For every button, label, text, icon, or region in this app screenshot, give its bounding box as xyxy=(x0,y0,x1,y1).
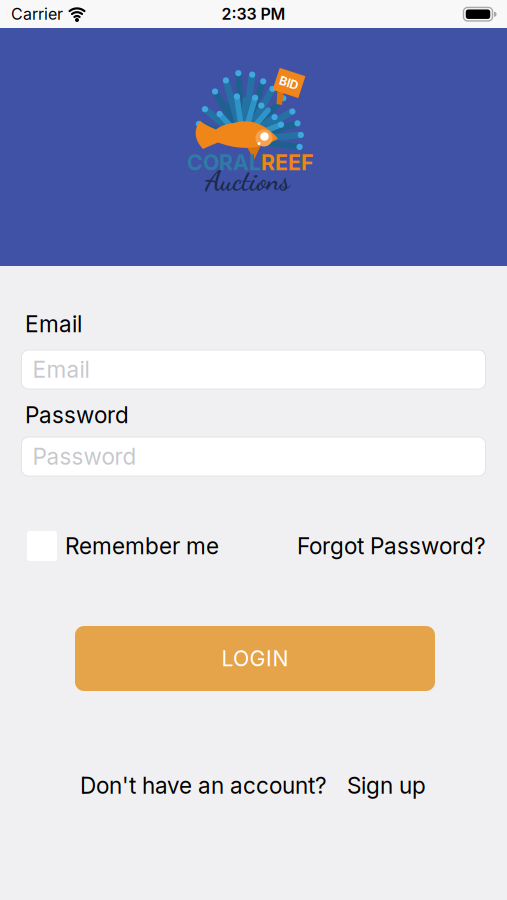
button[interactable]: LOGIN xyxy=(75,626,435,691)
staticText: REEF xyxy=(261,150,314,175)
button[interactable]: Password xyxy=(21,437,485,476)
staticText: Remember me xyxy=(65,533,219,559)
staticText: 2:33 PM xyxy=(221,5,285,23)
staticText: Password xyxy=(25,402,129,428)
staticText: BID xyxy=(279,76,299,90)
staticText: Carrier xyxy=(11,5,63,23)
button[interactable]: Sign up xyxy=(347,772,426,799)
staticText: Sign up xyxy=(347,772,426,799)
staticText: LOGIN xyxy=(221,646,288,671)
staticText: Email xyxy=(25,311,82,337)
button[interactable]: Remember me xyxy=(27,531,219,561)
button[interactable]: Email xyxy=(21,350,485,389)
staticText: Password xyxy=(32,443,136,470)
staticText: Email xyxy=(32,356,89,383)
staticText: Auctions xyxy=(205,165,290,197)
button[interactable]: Forgot Password? xyxy=(297,533,486,559)
staticText: Don't have an account? xyxy=(80,772,327,799)
staticText: Forgot Password? xyxy=(297,533,486,559)
staticText: CORAL xyxy=(187,150,261,175)
